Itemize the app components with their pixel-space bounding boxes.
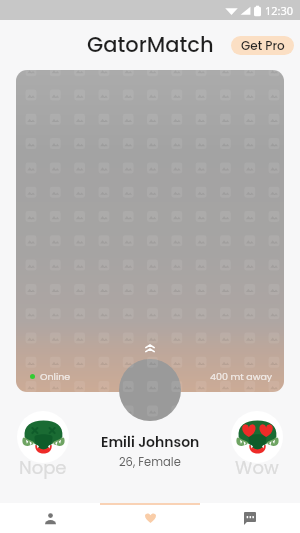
staticText: Online bbox=[40, 370, 71, 383]
staticText: Emili Johnson bbox=[101, 432, 200, 452]
staticText: 400 mt away bbox=[210, 370, 273, 383]
button[interactable]: Messages bbox=[200, 503, 300, 533]
button[interactable]: Nope bbox=[17, 411, 69, 463]
staticText: 26, Female bbox=[119, 454, 181, 470]
button[interactable]: Profile photo bbox=[119, 359, 181, 421]
button[interactable]: Matches bbox=[100, 503, 200, 533]
button[interactable]: Wow bbox=[231, 411, 283, 463]
button[interactable]: Profile bbox=[0, 503, 100, 533]
button[interactable]: Get Pro bbox=[231, 36, 294, 55]
staticText: Nope bbox=[19, 455, 67, 480]
staticText: Get Pro bbox=[241, 37, 285, 54]
button[interactable]: Profile card bbox=[16, 70, 284, 392]
staticText: 12:30 bbox=[265, 3, 294, 18]
staticText: GatorMatch bbox=[87, 30, 214, 59]
staticText: Wow bbox=[235, 455, 279, 480]
